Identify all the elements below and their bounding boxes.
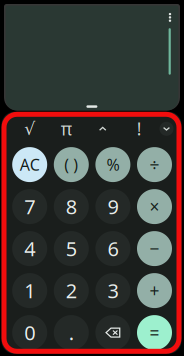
staticText: 1 <box>24 277 35 304</box>
button[interactable]: AC <box>12 147 47 182</box>
staticText: 0 <box>24 319 35 346</box>
button[interactable]: 0 <box>12 315 47 350</box>
button[interactable]: . <box>54 315 89 350</box>
staticText: % <box>106 154 119 175</box>
button[interactable]: 1 <box>12 273 47 308</box>
staticText: = <box>149 321 159 344</box>
staticText: + <box>149 279 159 302</box>
button[interactable]: ÷ <box>137 147 172 182</box>
button[interactable]: π <box>53 117 79 141</box>
button[interactable]: 8 <box>54 189 89 224</box>
staticText: 3 <box>107 277 118 304</box>
button[interactable]: 7 <box>12 189 47 224</box>
button[interactable]: 4 <box>12 231 47 266</box>
staticText: ÷ <box>149 153 159 176</box>
staticText: . <box>69 319 74 346</box>
button[interactable]: 9 <box>95 189 130 224</box>
staticText: − <box>149 237 159 260</box>
staticText: × <box>149 195 159 218</box>
staticText: √ <box>24 119 35 139</box>
button[interactable]: √ <box>17 117 43 141</box>
staticText: 7 <box>24 193 35 220</box>
staticText: 4 <box>24 235 35 262</box>
button[interactable]: % <box>95 147 130 182</box>
button[interactable]: ! <box>126 117 152 141</box>
button[interactable]: 2 <box>54 273 89 308</box>
button[interactable]: × <box>137 189 172 224</box>
button[interactable]: ( ) <box>54 147 89 182</box>
staticText: AC <box>20 154 40 175</box>
staticText: ! <box>137 117 142 140</box>
staticText: 8 <box>66 193 77 220</box>
button[interactable]: − <box>137 231 172 266</box>
staticText: 2 <box>66 277 77 304</box>
staticText: 9 <box>107 193 118 220</box>
button[interactable]: Exponent <box>91 117 115 141</box>
button[interactable]: More options <box>162 9 178 25</box>
button[interactable]: 6 <box>95 231 130 266</box>
staticText: 5 <box>66 235 77 262</box>
button[interactable]: More functions <box>159 122 173 136</box>
button[interactable]: 5 <box>54 231 89 266</box>
staticText: π <box>61 117 72 140</box>
staticText: ( ) <box>64 154 78 175</box>
staticText: 6 <box>107 235 118 262</box>
button[interactable]: 3 <box>95 273 130 308</box>
button[interactable] <box>95 315 130 350</box>
button[interactable]: + <box>137 273 172 308</box>
button[interactable]: = <box>137 315 172 350</box>
